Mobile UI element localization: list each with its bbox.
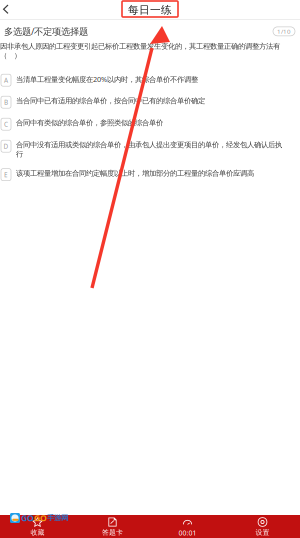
staticText: 设置 [255,528,269,537]
button[interactable]: 计时 [150,515,225,538]
staticText: 00:01 [178,528,196,537]
staticText: 手游网 [47,513,68,523]
button[interactable]: A [0,69,300,91]
button[interactable]: E [0,164,300,186]
staticText: E [4,170,8,179]
staticText: 1/10 [277,27,291,36]
button[interactable]: 返回 [0,0,18,20]
staticText: 每日一练 [128,3,172,17]
button[interactable]: D [0,135,300,164]
staticText: 收藏 [30,528,44,537]
button[interactable]: 收藏 [0,515,75,538]
staticText: 合同中有类似的综合单价，参照类似的综合单价 [16,118,163,127]
staticText: 该项工程量增加在合同约定幅度以上时，增加部分的工程量的综合单价应调高 [16,169,254,178]
staticText: 答题卡 [102,528,123,537]
button[interactable]: 设置 [225,515,300,538]
staticText: B [4,98,8,106]
staticText: C [4,120,8,128]
button[interactable]: 答题卡 [75,515,150,538]
staticText: GO [21,512,34,524]
button[interactable]: C [0,113,300,135]
button[interactable]: B [0,91,300,113]
staticText: 当合同中已有适用的综合单价，按合同中已有的综合单价确定 [16,96,205,105]
staticText: 多选题/不定项选择题 [4,25,88,38]
staticText: GO [34,512,47,524]
staticText: A [4,76,8,84]
staticText: 合同中没有适用或类似的综合单价，由承包人提出变更项目的单价，经发包人确认后执行 [16,140,282,159]
staticText: 因非承包人原因的工程变更引起已标价工程数量发生变化的，其工程数量正确的调整方法有… [0,42,280,60]
staticText: 当清单工程量变化幅度在20%以内时，其综合单价不作调整 [16,74,198,84]
staticText: D [3,142,8,150]
